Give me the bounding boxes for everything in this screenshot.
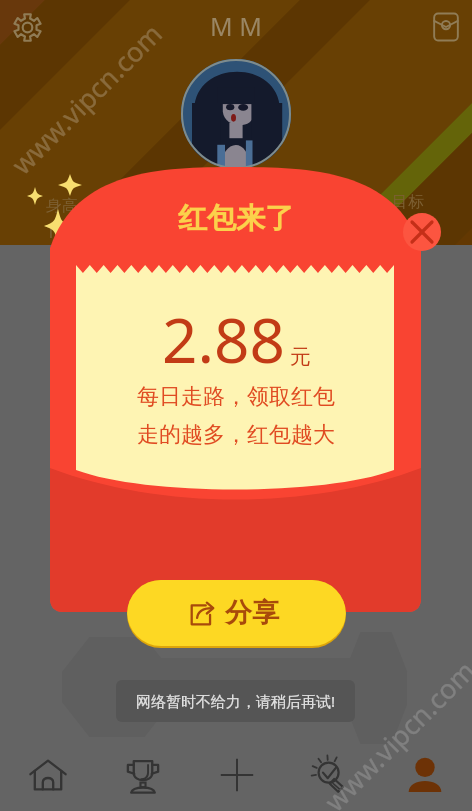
- button[interactable]: Discover: [284, 740, 378, 811]
- button[interactable]: Profile: [378, 740, 472, 811]
- staticText: www.vipcn.com: [3, 15, 170, 182]
- button[interactable]: Add: [190, 740, 284, 811]
- staticText: 16: [45, 218, 67, 244]
- button[interactable]: Home: [0, 740, 95, 811]
- button[interactable]: Settings: [7, 7, 47, 47]
- staticText: 网络暂时不给力，请稍后再试!: [136, 691, 336, 711]
- staticText: 分享: [225, 596, 279, 630]
- staticText: 身高: [46, 196, 78, 216]
- staticText: 目标: [392, 192, 424, 212]
- staticText: 每日走路，领取红包: [137, 383, 335, 411]
- button[interactable]: 分享: [127, 580, 346, 648]
- staticText: www.vipcn.com: [316, 652, 472, 811]
- staticText: 元: [290, 344, 311, 370]
- staticText: 红包来了: [178, 200, 294, 237]
- button[interactable]: Red packet: [426, 7, 466, 47]
- staticText: 走的越多，红包越大: [137, 421, 335, 449]
- button[interactable]: Close: [403, 213, 441, 251]
- staticText: M M: [210, 9, 262, 43]
- staticText: 2.88: [162, 297, 286, 381]
- button[interactable]: Ranking: [95, 740, 190, 811]
